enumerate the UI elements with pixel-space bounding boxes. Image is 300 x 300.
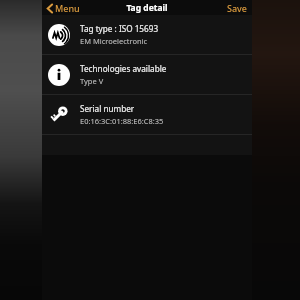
button[interactable]: Serial number bbox=[42, 95, 252, 134]
button[interactable]: NFC tag type bbox=[42, 15, 252, 54]
staticText: Type V bbox=[80, 76, 104, 86]
staticText: Technologies available bbox=[80, 63, 167, 74]
button[interactable]: Menu bbox=[42, 2, 84, 14]
button[interactable]: Information bbox=[42, 55, 252, 94]
button[interactable]: Save bbox=[223, 0, 252, 15]
staticText: Save bbox=[227, 2, 248, 13]
other: NFC tag type bbox=[48, 24, 70, 46]
staticText: Tag detail bbox=[126, 2, 168, 14]
staticText: EM Microelectronic bbox=[80, 36, 148, 46]
staticText: E0:16:3C:01:88:E6:C8:35 bbox=[80, 116, 164, 126]
staticText: Tag type : ISO 15693 bbox=[80, 23, 159, 34]
other: Serial number bbox=[47, 103, 70, 126]
other: Information bbox=[48, 64, 70, 86]
staticText: Serial number bbox=[80, 103, 135, 114]
staticText: Menu bbox=[55, 2, 80, 14]
